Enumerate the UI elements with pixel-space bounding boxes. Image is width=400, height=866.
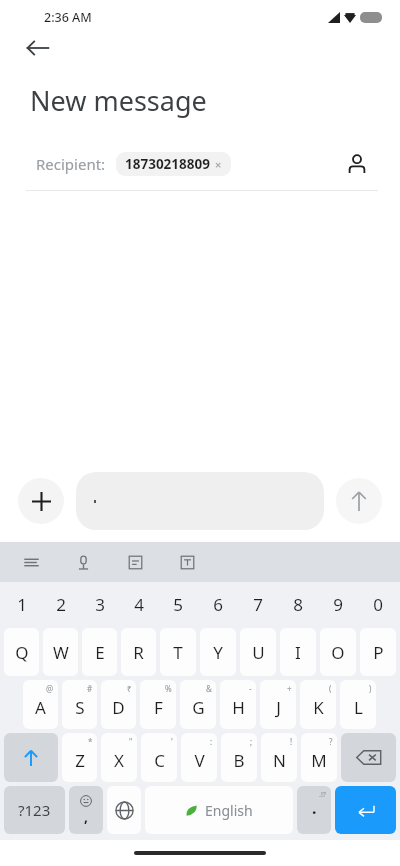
button[interactable] xyxy=(76,472,324,530)
button[interactable]: ? xyxy=(301,733,337,782)
staticText: F xyxy=(154,696,163,719)
button[interactable]: ( xyxy=(300,680,336,729)
staticText: × xyxy=(215,157,222,172)
staticText: 3 xyxy=(95,593,105,616)
staticText: V xyxy=(194,749,205,772)
button[interactable]: 9 xyxy=(318,582,358,626)
button[interactable]: R xyxy=(121,628,156,676)
button[interactable]: 5 xyxy=(158,582,198,626)
staticText: " xyxy=(129,736,133,747)
staticText: M xyxy=(311,749,327,772)
button[interactable]: W xyxy=(43,628,78,676)
staticText: @ xyxy=(46,683,54,694)
staticText: J xyxy=(276,696,281,719)
button[interactable]: Period xyxy=(297,786,331,834)
staticText: I xyxy=(295,641,301,664)
button[interactable]: Enter xyxy=(335,786,396,834)
staticText: English xyxy=(205,801,253,820)
button[interactable]: # xyxy=(62,680,97,729)
button[interactable]: ! xyxy=(261,733,297,782)
button[interactable]: Clipboard xyxy=(122,549,148,575)
button[interactable]: 6 xyxy=(198,582,238,626)
button[interactable]: 3 xyxy=(80,582,119,626)
button[interactable]: ; xyxy=(221,733,257,782)
staticText: New message xyxy=(30,82,207,119)
staticText: K xyxy=(313,696,324,719)
staticText: 2:36 AM xyxy=(44,9,92,26)
staticText: Y xyxy=(213,641,223,664)
staticText: # xyxy=(87,683,93,694)
staticText: % xyxy=(165,683,172,694)
staticText: 1 xyxy=(17,593,27,616)
button[interactable]: Shift xyxy=(4,733,58,782)
staticText: H xyxy=(232,696,245,719)
button[interactable]: I xyxy=(280,628,316,676)
staticText: 9 xyxy=(333,593,343,616)
button[interactable]: 7 xyxy=(238,582,278,626)
staticText: W xyxy=(53,641,69,664)
button[interactable]: Text edit xyxy=(174,549,200,575)
button[interactable]: U xyxy=(240,628,276,676)
button[interactable]: Space xyxy=(145,786,293,834)
button[interactable]: T xyxy=(160,628,196,676)
staticText: E xyxy=(95,641,105,664)
button[interactable]: Backspace xyxy=(341,733,396,782)
staticText: O xyxy=(331,641,345,664)
staticText: : xyxy=(210,736,213,747)
staticText: ₹ xyxy=(127,683,132,694)
button[interactable]: 8 xyxy=(278,582,318,626)
staticText: ?123 xyxy=(18,800,51,820)
button[interactable]: 4 xyxy=(119,582,158,626)
staticText: 2 xyxy=(56,593,66,616)
staticText: Q xyxy=(15,641,29,664)
button[interactable]: " xyxy=(101,733,137,782)
button[interactable]: Back xyxy=(26,34,400,62)
button[interactable]: Add contact xyxy=(342,149,372,179)
staticText: 5 xyxy=(173,593,183,616)
button[interactable]: Attach xyxy=(18,478,64,524)
button[interactable]: Voice input xyxy=(70,549,96,575)
staticText: 18730218809 xyxy=(125,155,210,173)
staticText: S xyxy=(75,696,85,719)
staticText: * xyxy=(88,736,93,747)
staticText: A xyxy=(35,696,46,719)
button[interactable]: E xyxy=(82,628,117,676)
staticText: 8 xyxy=(293,593,303,616)
button[interactable]: 2 xyxy=(41,582,80,626)
staticText: T xyxy=(173,641,183,664)
button[interactable]: Q xyxy=(4,628,39,676)
staticText: , xyxy=(84,807,88,826)
staticText: + xyxy=(287,683,292,694)
staticText: 6 xyxy=(213,593,223,616)
staticText: .!? xyxy=(319,790,326,800)
button[interactable]: O xyxy=(320,628,356,676)
staticText: ! xyxy=(290,736,293,747)
staticText: ; xyxy=(250,736,253,747)
staticText: G xyxy=(192,696,205,719)
staticText: D xyxy=(112,696,125,719)
button[interactable]: ?123 xyxy=(4,786,65,834)
button[interactable]: Change language xyxy=(107,786,141,834)
button[interactable]: : xyxy=(181,733,217,782)
button[interactable]: + xyxy=(260,680,296,729)
button[interactable]: Emoji and comma xyxy=(69,786,103,834)
staticText: X xyxy=(114,749,124,772)
button[interactable]: 1 xyxy=(2,582,41,626)
staticText: 0 xyxy=(373,593,383,616)
button[interactable]: ₹ xyxy=(101,680,136,729)
button[interactable]: Menu xyxy=(18,549,44,575)
button[interactable]: ' xyxy=(141,733,177,782)
button[interactable]: Send xyxy=(336,478,382,524)
staticText: L xyxy=(354,696,363,719)
button[interactable]: % xyxy=(140,680,176,729)
button[interactable]: ) xyxy=(340,680,376,729)
button[interactable]: P xyxy=(360,628,396,676)
button[interactable]: * xyxy=(62,733,97,782)
staticText: & xyxy=(206,683,212,694)
button[interactable]: & xyxy=(180,680,216,729)
button[interactable]: 18730218809 xyxy=(116,152,231,176)
button[interactable]: @ xyxy=(23,680,58,729)
button[interactable]: 0 xyxy=(358,582,398,626)
button[interactable]: - xyxy=(220,680,256,729)
button[interactable]: Y xyxy=(200,628,236,676)
